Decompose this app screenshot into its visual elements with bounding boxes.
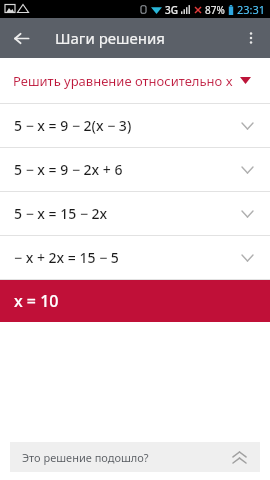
- staticText: 87%: [205, 3, 225, 17]
- button[interactable]: Решить уравнение относительно x: [0, 58, 270, 103]
- staticText: Это решение подошло?: [22, 450, 149, 465]
- staticText: 23:31: [237, 2, 266, 17]
- button[interactable]: 5 − x = 9 − 2x + 6: [0, 148, 270, 191]
- button[interactable]: 5 − x = 15 − 2x: [0, 192, 270, 235]
- staticText: x = 10: [14, 290, 59, 312]
- staticText: 3G: [165, 3, 178, 17]
- staticText: − x + 2x = 15 − 5: [14, 248, 119, 267]
- button[interactable]: Это решение подошло?: [10, 442, 260, 472]
- staticText: 5 − x = 9 − 2x + 6: [14, 160, 123, 179]
- button[interactable]: More options: [232, 19, 270, 57]
- staticText: 5 − x = 15 − 2x: [14, 204, 108, 223]
- button[interactable]: − x + 2x = 15 − 5: [0, 236, 270, 279]
- button[interactable]: 5 − x = 9 − 2(x − 3): [0, 104, 270, 147]
- staticText: Шаги решения: [55, 28, 165, 48]
- staticText: 5 − x = 9 − 2(x − 3): [14, 116, 132, 135]
- staticText: Решить уравнение относительно x: [13, 72, 233, 90]
- button[interactable]: Back: [2, 19, 40, 57]
- button[interactable]: x = 10: [0, 280, 270, 322]
